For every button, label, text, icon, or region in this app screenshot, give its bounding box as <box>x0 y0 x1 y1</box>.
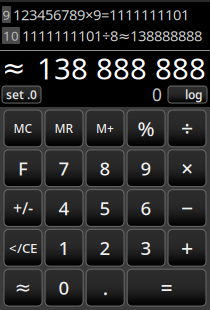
button[interactable]: × <box>168 150 206 187</box>
staticText: 138 888 888 <box>37 48 206 87</box>
button[interactable]: set .0 <box>2 86 41 103</box>
button[interactable]: MR <box>45 110 83 147</box>
staticText: 10 <box>3 27 19 44</box>
button[interactable]: 7 <box>45 150 83 187</box>
staticText: ≈ <box>2 52 25 84</box>
staticText: − <box>181 194 193 222</box>
staticText: % <box>137 115 154 142</box>
staticText: MC <box>13 120 32 136</box>
button[interactable]: 9 <box>127 150 165 187</box>
button[interactable]: − <box>168 190 206 226</box>
staticText: 5 <box>99 196 110 220</box>
staticText: ≈ <box>14 276 31 299</box>
button[interactable]: MC <box>4 110 42 147</box>
button[interactable]: % <box>127 110 165 147</box>
button[interactable]: 3 <box>127 229 165 266</box>
button[interactable]: 1 <box>45 229 83 266</box>
button[interactable]: 5 <box>86 190 124 226</box>
staticText: ÷ <box>181 114 193 142</box>
staticText: </CE <box>9 239 37 257</box>
button[interactable]: 8 <box>86 150 124 187</box>
button[interactable]: log <box>168 86 207 103</box>
staticText: 4 <box>58 196 69 220</box>
staticText: log <box>185 86 203 102</box>
staticText: 8 <box>99 156 110 181</box>
staticText: 1 <box>58 235 69 260</box>
staticText: 0 <box>59 275 70 300</box>
staticText: 6 <box>140 196 151 220</box>
staticText: 2 <box>99 235 110 260</box>
button[interactable]: 4 <box>45 190 83 226</box>
staticText: F <box>18 156 28 181</box>
button[interactable]: +/- <box>4 190 42 226</box>
staticText: 9 <box>140 156 151 181</box>
button[interactable]: = <box>127 269 206 306</box>
button[interactable]: . <box>86 269 124 306</box>
button[interactable]: M+ <box>86 110 124 147</box>
staticText: × <box>181 154 193 182</box>
staticText: M+ <box>96 120 114 136</box>
button[interactable]: </CE <box>4 229 42 266</box>
staticText: = <box>161 273 173 302</box>
button[interactable]: ÷ <box>168 110 206 147</box>
staticText: 1111111101÷8≈138888888 <box>22 26 202 45</box>
button[interactable]: 2 <box>86 229 124 266</box>
staticText: 9 <box>2 6 10 23</box>
staticText: 0 <box>152 83 162 106</box>
staticText: 123456789×9=1111111101 <box>13 5 189 24</box>
staticText: +/- <box>13 197 33 219</box>
staticText: + <box>181 234 193 262</box>
button[interactable]: 6 <box>127 190 165 226</box>
button[interactable]: 0 <box>45 269 83 306</box>
staticText: MR <box>54 120 73 136</box>
staticText: 3 <box>140 235 151 260</box>
staticText: set .0 <box>6 86 37 102</box>
button[interactable]: + <box>168 229 206 266</box>
staticText: . <box>103 274 108 301</box>
staticText: 7 <box>58 156 69 181</box>
button[interactable]: F <box>4 150 42 187</box>
button[interactable]: ≈ <box>4 269 42 306</box>
